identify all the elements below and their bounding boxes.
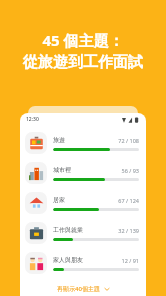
staticText: 12 / 91 [121, 257, 139, 264]
staticText: 旅遊 [53, 136, 65, 144]
staticText: 再顯示40個主題 [57, 285, 100, 293]
staticText: 城市裡 [53, 166, 71, 174]
staticText: 32 / 139 [118, 227, 139, 234]
staticText: 家人與朋友 [53, 256, 83, 264]
button[interactable]: 工作與就業 [20, 218, 146, 248]
staticText: 從旅遊到工作面試 [23, 53, 143, 72]
button[interactable]: 居家 [20, 188, 146, 218]
staticText: 67 / 124 [118, 197, 139, 204]
button[interactable]: 旅遊 [20, 128, 146, 158]
staticText: 72 / 108 [118, 137, 139, 144]
staticText: 工作與就業 [53, 226, 83, 234]
other: Expand [104, 286, 110, 292]
staticText: 12:30 [26, 116, 39, 123]
button[interactable]: 家人與朋友 [20, 248, 146, 278]
staticText: 45 個主題： [42, 30, 124, 50]
staticText: 居家 [53, 196, 65, 204]
staticText: 56 / 93 [121, 167, 139, 174]
button[interactable]: 再顯示40個主題 [20, 281, 146, 296]
button[interactable]: 城市裡 [20, 158, 146, 188]
